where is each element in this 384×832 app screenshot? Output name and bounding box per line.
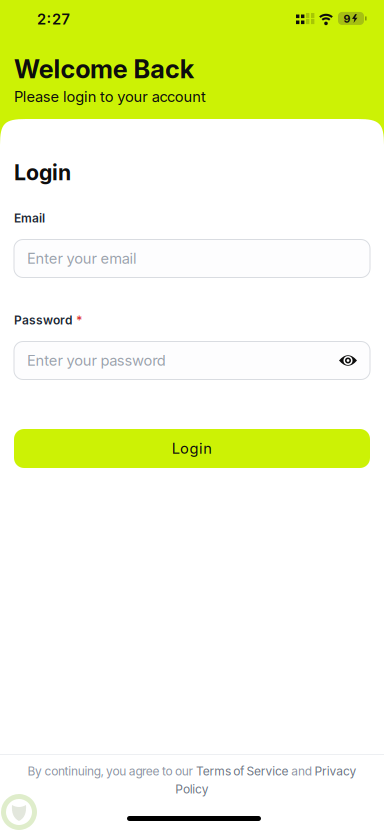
button[interactable]: Enter your password (14, 341, 370, 379)
staticText: Login (172, 440, 212, 457)
button[interactable]: Terms of Service (196, 764, 289, 778)
staticText: Please login to your account (14, 88, 206, 105)
button[interactable]: Login (14, 429, 370, 468)
staticText: Enter your email (27, 250, 137, 267)
staticText: and (289, 764, 314, 778)
staticText: 9 (343, 12, 350, 25)
button[interactable]: Privacy (314, 764, 357, 778)
staticText: Welcome Back (14, 54, 194, 84)
button[interactable]: Show password (338, 353, 370, 367)
staticText: Terms of Service (196, 764, 289, 778)
staticText: Password (14, 313, 72, 327)
staticText: 2:27 (37, 10, 69, 28)
staticText: Email (14, 211, 45, 225)
button[interactable]: Enter your email (14, 239, 370, 277)
staticText: Enter your password (27, 352, 166, 369)
button[interactable]: Policy (175, 782, 209, 796)
staticText: By continuing, you agree to our (27, 764, 196, 778)
staticText: * (76, 313, 82, 327)
staticText: Policy (175, 782, 209, 796)
staticText: Privacy (314, 764, 357, 778)
staticText: Login (14, 160, 71, 185)
